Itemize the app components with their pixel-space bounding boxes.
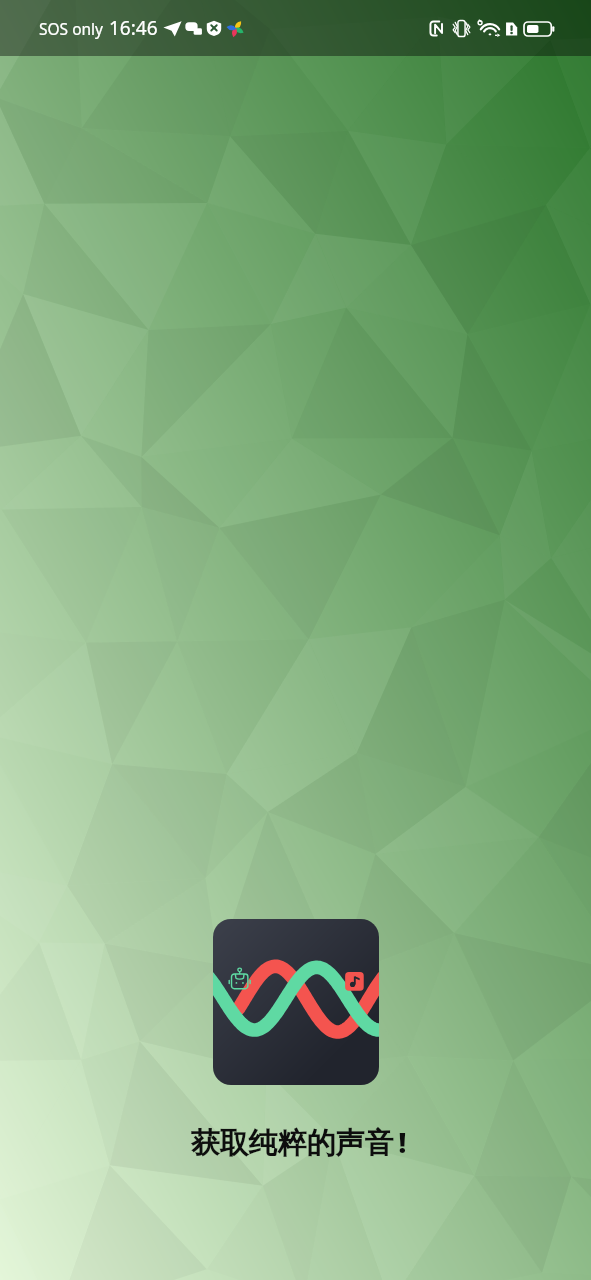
button[interactable]: App logo [213,919,379,1085]
staticText: 获取纯粹的声音 ! [190,1122,407,1162]
staticText: 16:46 [109,15,158,41]
staticText: SOS only [39,18,104,39]
